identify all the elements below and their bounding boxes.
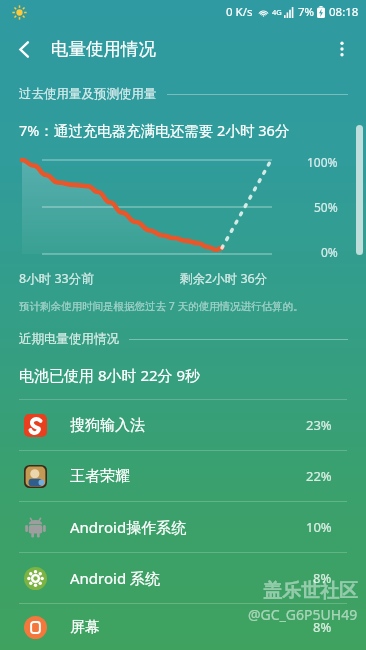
button[interactable]: Android操作系统 bbox=[0, 502, 366, 552]
staticText: 搜狗输入法 bbox=[70, 416, 145, 435]
staticText: 50% bbox=[314, 199, 338, 215]
button[interactable]: 搜狗输入法 bbox=[0, 400, 366, 450]
staticText: 8% bbox=[313, 569, 332, 587]
staticText: 盖乐世社区 bbox=[263, 579, 358, 603]
staticText: @GC_G6P5UH49 bbox=[248, 605, 358, 624]
staticText: 电量使用情况 bbox=[51, 38, 156, 60]
staticText: 王者荣耀 bbox=[70, 467, 130, 486]
staticText: 22% bbox=[306, 467, 332, 485]
staticText: 预计剩余使用时间是根据您过去 7 天的使用情况进行估算的。 bbox=[19, 299, 304, 313]
staticText: Android操作系统 bbox=[70, 517, 187, 537]
staticText: 10% bbox=[306, 518, 332, 536]
staticText: 屏幕 bbox=[70, 618, 100, 637]
staticText: 4G bbox=[272, 7, 282, 17]
staticText: Android 系统 bbox=[70, 568, 161, 588]
staticText: 7%：通过充电器充满电还需要 2小时 36分 bbox=[19, 120, 290, 140]
staticText: 8% bbox=[313, 618, 332, 636]
staticText: 100% bbox=[307, 154, 338, 170]
button[interactable]: More options bbox=[318, 25, 366, 73]
staticText: 近期电量使用情况 bbox=[19, 331, 119, 347]
staticText: 0% bbox=[321, 244, 338, 260]
staticText: 过去使用量及预测使用量 bbox=[19, 86, 157, 102]
staticText: 剩余2小时 36分 bbox=[180, 270, 268, 287]
button[interactable]: Back bbox=[0, 25, 48, 73]
staticText: 0 K/s bbox=[226, 4, 253, 20]
button[interactable]: 屏幕 bbox=[0, 604, 366, 650]
button[interactable]: Android 系统 bbox=[0, 553, 366, 603]
button[interactable]: 王者荣耀 bbox=[0, 451, 366, 501]
staticText: 电池已使用 8小时 22分 9秒 bbox=[19, 365, 201, 385]
staticText: 7% bbox=[298, 4, 315, 20]
staticText: 23% bbox=[306, 416, 332, 434]
staticText: 08:18 bbox=[329, 4, 359, 20]
staticText: 8小时 33分前 bbox=[19, 270, 94, 287]
